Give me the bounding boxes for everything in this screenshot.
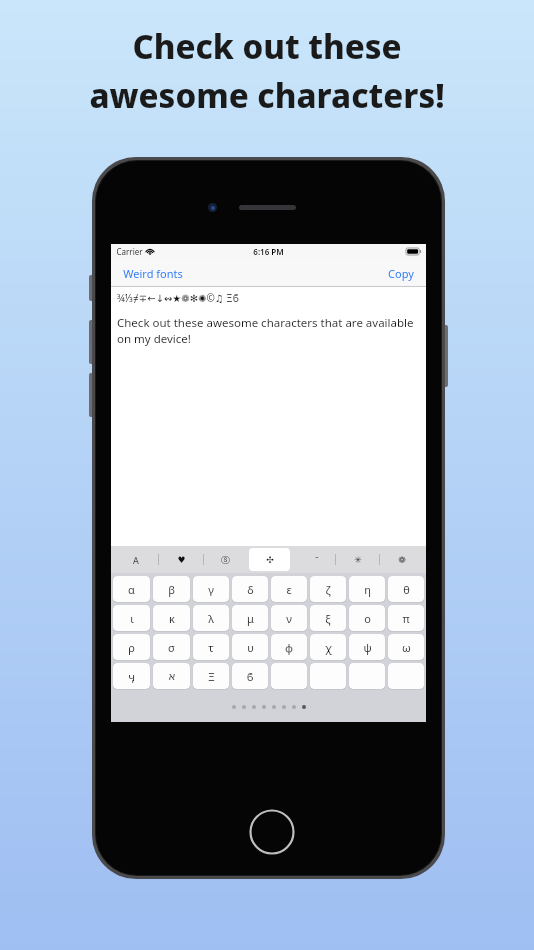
staticText: ⓢ bbox=[221, 554, 230, 565]
button[interactable]: ξ bbox=[310, 605, 346, 631]
button[interactable]: ✳ bbox=[337, 548, 378, 571]
button[interactable]: Copy bbox=[380, 262, 426, 285]
button[interactable]: τ bbox=[193, 634, 229, 660]
staticText: ✳ bbox=[354, 555, 362, 565]
button[interactable] bbox=[349, 663, 385, 689]
button[interactable]: ✣ bbox=[249, 548, 290, 571]
staticText: ι bbox=[130, 611, 134, 626]
button[interactable]: Home bbox=[249, 809, 295, 855]
staticText: φ bbox=[285, 640, 293, 655]
button[interactable]: π bbox=[388, 605, 424, 631]
staticText: A bbox=[133, 554, 139, 566]
staticText: ¾⅓≠∓←↓↭★❁✻✺©♫ Ξϐ bbox=[117, 291, 239, 305]
staticText: λ bbox=[208, 611, 214, 626]
button[interactable]: κ bbox=[153, 605, 190, 631]
button[interactable]: χ bbox=[310, 634, 346, 660]
staticText: Carrier bbox=[116, 246, 143, 257]
staticText: χ bbox=[325, 640, 332, 655]
staticText: ω bbox=[402, 640, 411, 655]
button[interactable]: ι bbox=[113, 605, 150, 631]
button[interactable]: ӌ bbox=[113, 663, 150, 689]
staticText: η bbox=[364, 582, 371, 597]
staticText: π bbox=[402, 611, 410, 626]
staticText: Check out these awesome characters that … bbox=[117, 315, 420, 346]
staticText: ϐ bbox=[246, 669, 254, 684]
staticText: 6:16 PM bbox=[253, 246, 284, 257]
staticText: τ bbox=[208, 640, 214, 655]
staticText: Weird fonts bbox=[123, 266, 183, 281]
staticText: Check out these bbox=[132, 24, 402, 69]
staticText: ψ bbox=[363, 640, 372, 655]
button[interactable] bbox=[271, 663, 307, 689]
button[interactable]: φ bbox=[271, 634, 307, 660]
button[interactable]: σ bbox=[153, 634, 190, 660]
button[interactable]: υ bbox=[232, 634, 268, 660]
button[interactable]: ⓢ bbox=[205, 548, 246, 571]
button[interactable]: ε bbox=[271, 576, 307, 602]
staticText: ♥ bbox=[177, 555, 186, 565]
staticText: δ bbox=[247, 582, 254, 597]
button[interactable]: א bbox=[153, 663, 190, 689]
button[interactable]: ♥ bbox=[160, 548, 202, 571]
staticText: β bbox=[168, 582, 175, 597]
button[interactable]: Ξ bbox=[193, 663, 229, 689]
staticText: σ bbox=[168, 640, 175, 655]
staticText: ρ bbox=[128, 640, 135, 655]
button[interactable]: ϐ bbox=[232, 663, 268, 689]
button[interactable]: ֿ bbox=[293, 548, 334, 571]
staticText: θ bbox=[403, 582, 410, 597]
staticText: κ bbox=[169, 611, 175, 626]
staticText: ν bbox=[286, 611, 292, 626]
button[interactable]: β bbox=[153, 576, 190, 602]
staticText: ξ bbox=[325, 611, 331, 626]
staticText: υ bbox=[247, 640, 254, 655]
staticText: ε bbox=[286, 582, 292, 597]
button[interactable]: ω bbox=[388, 634, 424, 660]
button[interactable]: ζ bbox=[310, 576, 346, 602]
button[interactable]: ρ bbox=[113, 634, 150, 660]
staticText: ӌ bbox=[128, 669, 135, 684]
button[interactable]: λ bbox=[193, 605, 229, 631]
button[interactable]: α bbox=[113, 576, 150, 602]
button[interactable]: η bbox=[349, 576, 385, 602]
button[interactable] bbox=[310, 663, 346, 689]
button[interactable]: ❁ bbox=[381, 548, 422, 571]
staticText: γ bbox=[208, 582, 214, 597]
staticText: ✣ bbox=[266, 555, 274, 565]
button[interactable]: Weird fonts bbox=[111, 262, 191, 285]
staticText: Copy bbox=[388, 266, 414, 281]
button[interactable]: ψ bbox=[349, 634, 385, 660]
staticText: α bbox=[128, 582, 135, 597]
staticText: א bbox=[168, 670, 176, 683]
staticText: ❁ bbox=[398, 555, 406, 565]
staticText: ο bbox=[364, 611, 371, 626]
staticText: ζ bbox=[325, 582, 331, 597]
button[interactable]: δ bbox=[232, 576, 268, 602]
staticText: awesome characters! bbox=[89, 73, 445, 118]
staticText: Ξ bbox=[208, 669, 215, 684]
button[interactable] bbox=[388, 663, 424, 689]
button[interactable]: ν bbox=[271, 605, 307, 631]
button[interactable]: μ bbox=[232, 605, 268, 631]
button[interactable]: ο bbox=[349, 605, 385, 631]
button[interactable]: θ bbox=[388, 576, 424, 602]
button[interactable]: A bbox=[115, 548, 157, 571]
staticText: μ bbox=[247, 611, 254, 626]
button[interactable]: γ bbox=[193, 576, 229, 602]
